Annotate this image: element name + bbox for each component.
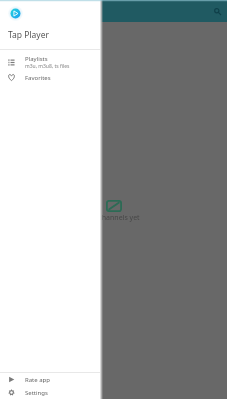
button[interactable]: Search [210, 4, 224, 18]
staticText: Playlists [25, 55, 48, 63]
staticText: Tap Player [8, 29, 49, 41]
staticText: Favorites [25, 74, 51, 82]
staticText: No channels yet [87, 213, 140, 223]
staticText: Settings [25, 389, 48, 397]
button[interactable]: Rate app [0, 373, 100, 386]
button[interactable]: Favorites [0, 70, 100, 85]
staticText: m3u, m3u8, ts files [25, 63, 70, 70]
button[interactable]: Open navigation drawer [3, 4, 17, 18]
button[interactable]: Tap Player [0, 0, 100, 49]
button[interactable]: Settings [0, 386, 100, 399]
staticText: Rate app [25, 376, 50, 384]
button[interactable]: Close navigation drawer [103, 0, 227, 399]
button[interactable]: Playlists [0, 54, 100, 70]
